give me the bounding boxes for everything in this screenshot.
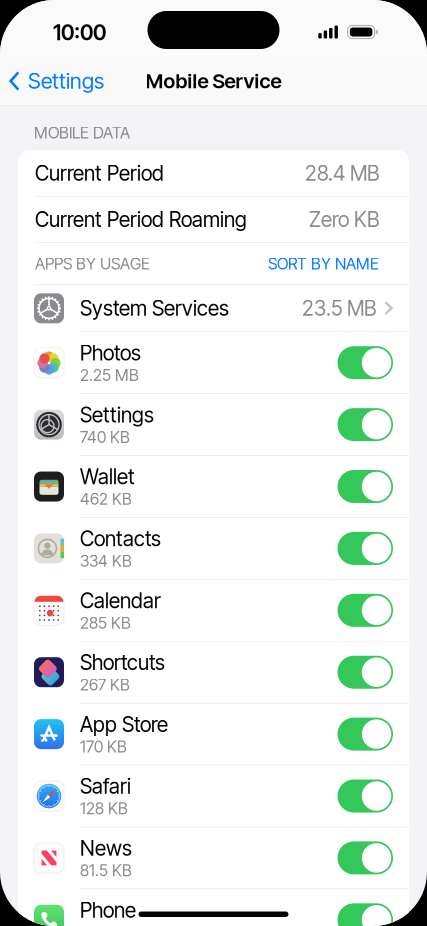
staticText: Shortcuts [80,650,165,675]
staticText: Settings [28,68,104,94]
staticText: 462 KB [80,489,132,509]
staticText: 334 KB [80,551,132,571]
button[interactable]: Calendar [18,580,409,641]
staticText: 285 KB [80,613,131,632]
staticText: 170 KB [80,737,127,756]
staticText: Phone [80,898,136,923]
staticText: Calendar [80,588,161,613]
button[interactable]: Current Period [18,150,409,196]
staticText: Contacts [80,526,161,551]
staticText: 81.5 KB [80,861,132,880]
staticText: 740 KB [80,427,130,447]
button[interactable]: App Store [18,703,409,765]
staticText: 23.5 MB [302,296,376,321]
staticText: Settings [80,402,154,427]
button[interactable]: Wallet [18,456,409,517]
staticText: 10:00 [53,20,106,45]
button[interactable]: News [18,827,409,889]
staticText: 267 KB [80,675,130,694]
staticText: System Services [80,296,229,321]
button[interactable]: Current Period Roaming [18,197,409,242]
staticText: Wallet [80,464,135,489]
button[interactable]: Contacts [18,518,409,579]
staticText: 128 KB [80,799,128,818]
button[interactable]: System Services [18,285,409,331]
staticText: Photos [80,340,141,365]
staticText: App Store [80,712,168,737]
button[interactable]: SORT BY NAME [268,246,379,281]
staticText: News [80,836,132,861]
staticText: 2.25 MB [80,365,139,385]
staticText: Current Period Roaming [35,207,247,232]
staticText: SORT BY NAME [268,254,379,273]
staticText: Zero KB [309,207,379,232]
staticText: APPS BY USAGE [35,254,150,273]
staticText: MOBILE DATA [34,123,130,142]
button[interactable]: Shortcuts [18,642,409,703]
button[interactable]: Settings [0,60,104,102]
button[interactable]: Safari [18,765,409,827]
staticText: Safari [80,774,131,799]
button[interactable]: Settings [18,394,409,455]
staticText: 28.4 MB [305,161,379,186]
staticText: Mobile Service [145,69,281,93]
staticText: Current Period [35,161,164,186]
button[interactable]: Phone [18,889,409,926]
button[interactable]: Photos [18,332,409,393]
